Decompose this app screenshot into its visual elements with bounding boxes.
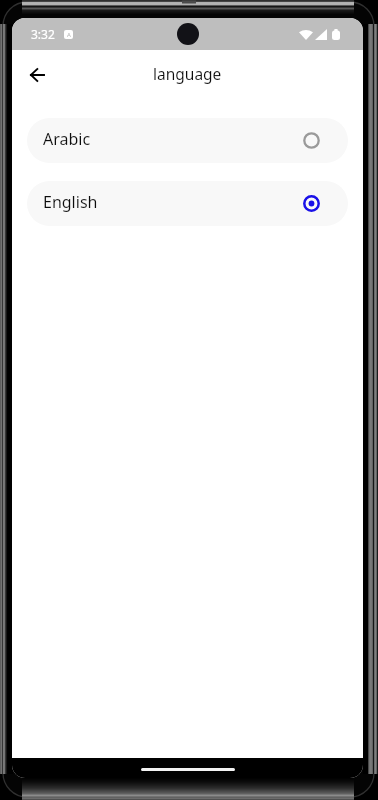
staticText: language — [153, 63, 222, 84]
staticText: Arabic — [43, 128, 91, 150]
staticText: English — [43, 191, 98, 213]
staticText: 3:32 — [31, 26, 55, 42]
staticText: A — [67, 31, 71, 39]
button[interactable]: Back — [20, 58, 54, 92]
button[interactable]: Arabic — [27, 118, 348, 163]
button[interactable]: English — [27, 181, 348, 226]
